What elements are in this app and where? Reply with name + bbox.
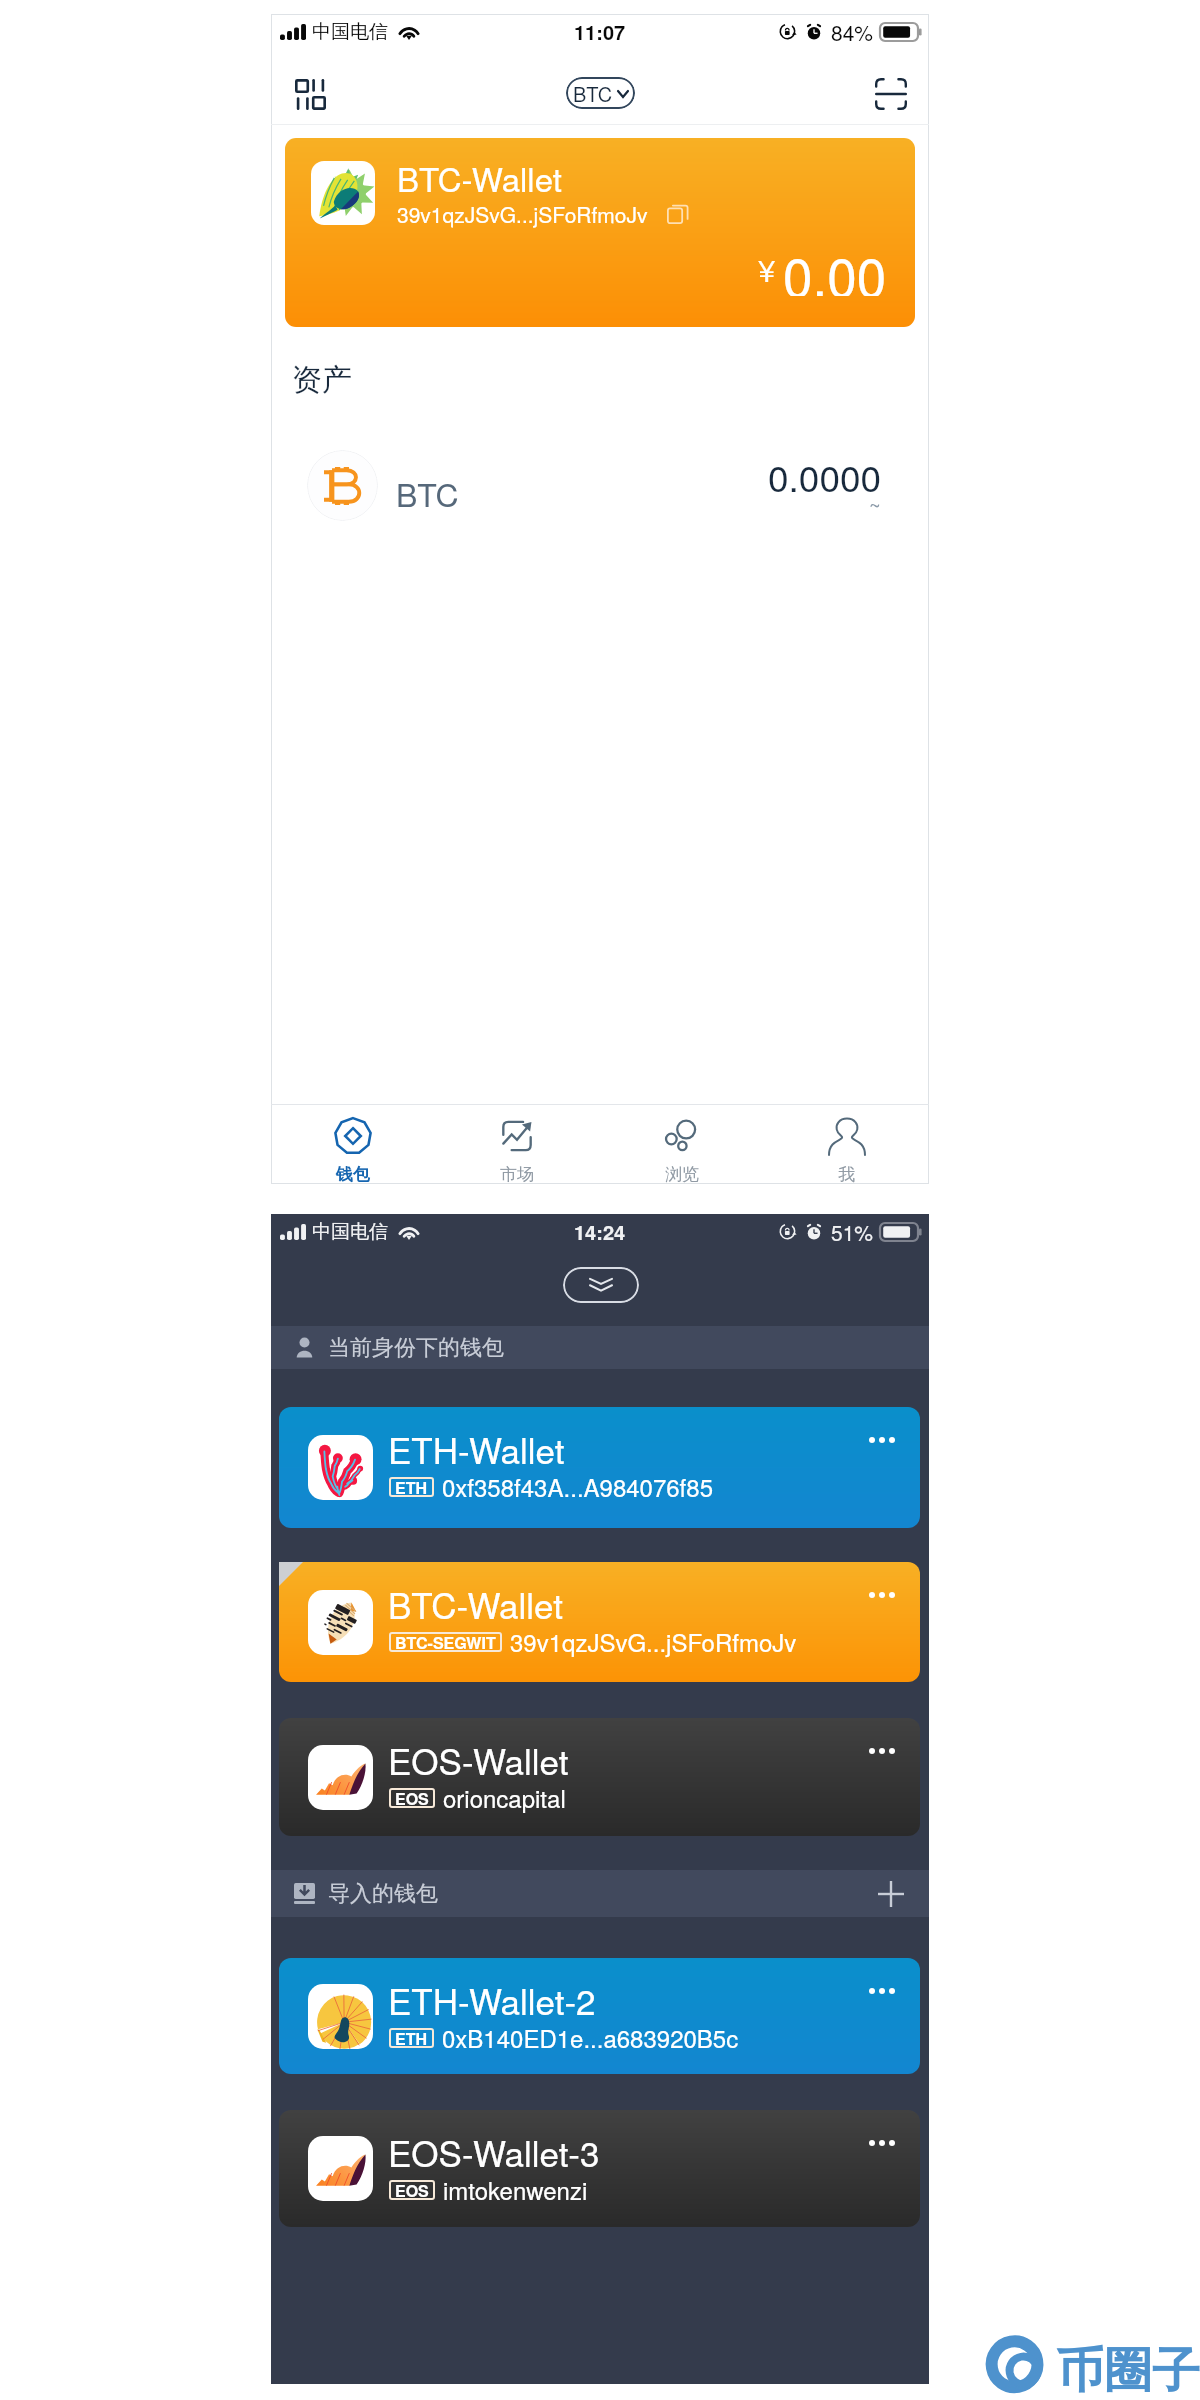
- staticText: 中国电信: [312, 20, 388, 44]
- staticText: 51%: [831, 1217, 874, 1247]
- button[interactable]: [279, 1718, 920, 1836]
- staticText: BTC-Wallet: [397, 154, 562, 201]
- staticText: ETH-Wallet: [388, 1424, 565, 1474]
- staticText: 14:24: [574, 1217, 626, 1246]
- staticText: 0.00: [783, 236, 887, 296]
- staticText: EOS-Wallet: [388, 1735, 569, 1785]
- staticText: ETH: [395, 2027, 428, 2047]
- staticText: ETH-Wallet-2: [388, 1975, 596, 2025]
- button[interactable]: More options: [865, 1433, 899, 1447]
- staticText: 浏览: [665, 1164, 699, 1185]
- staticText: 导入的钱包: [328, 1880, 438, 1908]
- staticText: 市场: [500, 1164, 534, 1185]
- staticText: 0.0000: [768, 450, 882, 503]
- staticText: ¥: [758, 246, 776, 290]
- staticText: BTC-Wallet: [388, 1579, 563, 1629]
- button[interactable]: More options: [865, 1588, 899, 1602]
- button[interactable]: 钱包: [271, 1105, 435, 1184]
- button[interactable]: [279, 1562, 920, 1682]
- button[interactable]: [279, 1407, 920, 1528]
- staticText: EOS: [395, 1787, 429, 1807]
- button[interactable]: More options: [865, 2136, 899, 2150]
- staticText: 0xf358f43A...A984076f85: [442, 1469, 713, 1503]
- staticText: 币圈子: [1056, 2341, 1200, 2400]
- staticText: 39v1qzJSvG...jSFoRfmoJv: [510, 1624, 797, 1658]
- staticText: 0xB140ED1e...a683920B5c: [442, 2020, 739, 2054]
- staticText: 资产: [292, 361, 352, 399]
- button[interactable]: 我: [764, 1105, 929, 1184]
- button[interactable]: 浏览: [599, 1105, 764, 1184]
- staticText: 中国电信: [312, 1220, 388, 1244]
- staticText: BTC: [396, 470, 459, 516]
- staticText: 84%: [831, 17, 874, 47]
- staticText: EOS-Wallet-3: [388, 2127, 600, 2177]
- button[interactable]: 市场: [435, 1105, 599, 1184]
- staticText: orioncapital: [443, 1780, 566, 1814]
- button[interactable]: More options: [865, 1984, 899, 1998]
- button[interactable]: Collapse: [563, 1267, 639, 1303]
- staticText: 钱包: [336, 1164, 370, 1185]
- button[interactable]: [279, 1958, 920, 2074]
- staticText: 39v1qzJSvG...jSFoRfmoJv: [397, 199, 648, 229]
- button[interactable]: [279, 2110, 920, 2227]
- staticText: imtokenwenzi: [443, 2172, 588, 2206]
- button[interactable]: BTC: [271, 435, 929, 533]
- button[interactable]: Scan QR code: [857, 60, 925, 128]
- staticText: BTC: [573, 79, 613, 108]
- staticText: 11:07: [574, 17, 626, 46]
- button[interactable]: More options: [865, 1744, 899, 1758]
- button[interactable]: Add wallet: [867, 1870, 915, 1917]
- staticText: 我: [838, 1164, 855, 1185]
- staticText: ~: [869, 490, 881, 519]
- button[interactable]: BTC-Wallet: [285, 138, 915, 327]
- staticText: EOS: [395, 2179, 429, 2199]
- button[interactable]: BTC: [566, 77, 635, 109]
- button[interactable]: Wallet manager: [276, 60, 344, 128]
- staticText: ETH: [395, 1476, 428, 1496]
- staticText: 当前身份下的钱包: [328, 1334, 504, 1362]
- staticText: BTC-SEGWIT: [395, 1631, 496, 1651]
